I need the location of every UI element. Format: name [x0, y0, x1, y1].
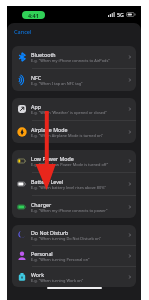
staticText: E.g. “When battery level rises above 80%… — [31, 185, 106, 190]
staticText: Work — [31, 271, 45, 278]
staticText: E.g. “When Airplane Mode is turned on” — [31, 133, 103, 138]
staticText: E.g. “When I tap an NFC tag” — [31, 81, 83, 86]
button[interactable]: Low Power Mode — [12, 150, 136, 172]
staticText: E.g. “When turning Do Not Disturb on” — [31, 236, 101, 241]
button[interactable]: Bluetooth — [12, 46, 136, 68]
button[interactable]: Cancel — [14, 28, 32, 36]
staticText: E.g. “When my iPhone connects to AirPods… — [31, 58, 110, 63]
staticText: Personal — [31, 250, 53, 257]
staticText: Battery Level — [31, 178, 64, 185]
button[interactable]: Airplane Mode — [12, 121, 136, 143]
button[interactable]: Battery Level — [12, 173, 136, 195]
button[interactable]: Charger — [12, 196, 136, 218]
staticText: NFC — [31, 74, 42, 81]
staticText: E.g. “When turning Work on” — [31, 278, 84, 283]
staticText: 4:41 — [28, 12, 39, 19]
staticText: Cancel — [14, 28, 32, 36]
button[interactable]: Personal — [12, 246, 136, 266]
button[interactable]: Do Not Disturb — [12, 225, 136, 245]
staticText: Charger — [31, 201, 52, 208]
staticText: E.g. “When turning Personal on” — [31, 257, 90, 262]
button[interactable]: Work — [12, 267, 136, 287]
button[interactable]: App — [12, 98, 136, 120]
staticText: App — [31, 103, 41, 110]
staticText: E.g. “When my iPhone connects to power” — [31, 208, 108, 213]
staticText: 5G — [117, 11, 124, 18]
staticText: E.g. “When Low Power Mode is turned off” — [31, 162, 109, 167]
staticText: Do Not Disturb — [31, 229, 69, 236]
staticText: Airplane Mode — [31, 126, 68, 133]
button[interactable]: NFC — [12, 69, 136, 91]
staticText: E.g. “When ‘Weather’ is opened or closed… — [31, 110, 107, 115]
staticText: Bluetooth — [31, 51, 56, 58]
staticText: Low Power Mode — [31, 155, 74, 162]
